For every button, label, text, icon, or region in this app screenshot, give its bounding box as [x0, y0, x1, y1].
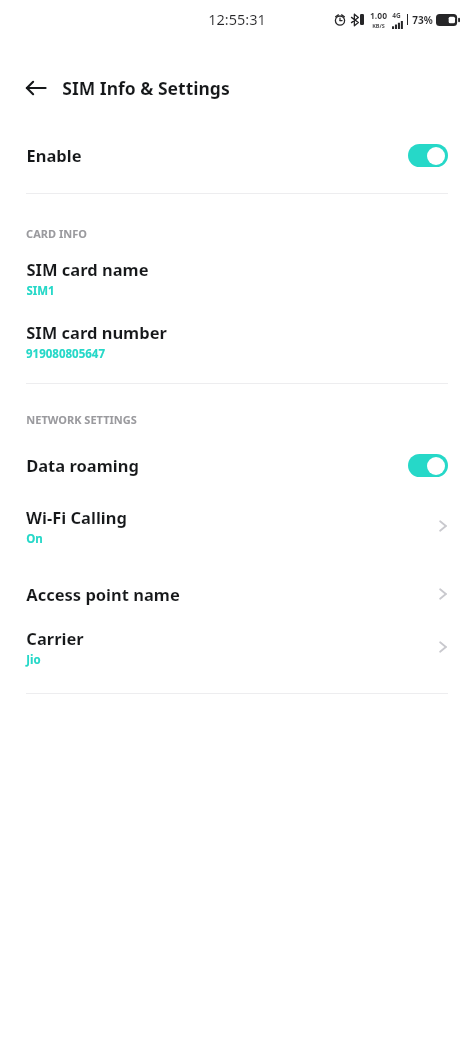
staticText: Jio — [26, 652, 41, 668]
staticText: Carrier — [26, 627, 84, 649]
staticText: CARD INFO — [26, 226, 87, 241]
staticText: Wi-Fi Calling — [26, 506, 127, 528]
staticText: Enable — [26, 144, 82, 166]
staticText: SIM Info & Settings — [62, 76, 230, 100]
button[interactable]: Access point name — [0, 570, 474, 618]
staticText: 1.00 — [370, 10, 387, 22]
button[interactable]: Back — [22, 74, 50, 102]
button[interactable]: Data roaming — [0, 441, 474, 489]
staticText: 919080805647 — [26, 346, 105, 362]
staticText: 12:55:31 — [208, 9, 266, 29]
staticText: KB/S — [372, 22, 385, 29]
staticText: On — [26, 531, 43, 547]
staticText: NETWORK SETTINGS — [26, 412, 137, 427]
staticText: Access point name — [26, 583, 180, 605]
staticText: 4G — [392, 11, 401, 20]
button[interactable]: Wi-Fi Calling — [0, 500, 474, 552]
button[interactable]: Enable — [0, 131, 474, 179]
staticText: Data roaming — [26, 454, 139, 476]
staticText: SIM card number — [26, 321, 167, 343]
button[interactable]: SIM card number — [0, 317, 474, 370]
staticText: SIM card name — [26, 258, 149, 280]
button[interactable]: Carrier — [0, 621, 474, 673]
staticText: SIM1 — [26, 283, 55, 299]
button[interactable]: SIM card name — [0, 254, 474, 307]
staticText: 73% — [412, 13, 433, 27]
